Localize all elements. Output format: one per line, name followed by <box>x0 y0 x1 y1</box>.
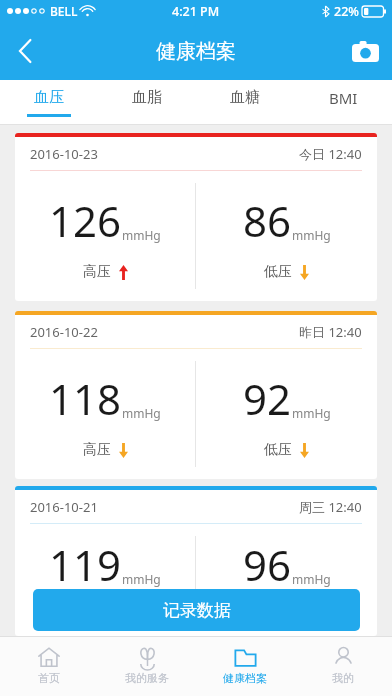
staticText: 96 <box>243 536 292 593</box>
staticText: 我的服务 <box>125 671 169 685</box>
button[interactable]: 我的 <box>294 636 392 696</box>
button[interactable]: 我的服务 <box>98 636 196 696</box>
staticText: 周三 12:40 <box>299 498 362 516</box>
staticText: 低压 <box>264 263 292 281</box>
staticText: 血脂 <box>132 88 162 107</box>
button[interactable]: 血糖 <box>196 80 294 125</box>
staticText: 血糖 <box>230 88 260 107</box>
staticText: 血压 <box>34 88 64 107</box>
staticText: mmHg <box>122 227 161 243</box>
staticText: mmHg <box>292 227 331 243</box>
staticText: 我的 <box>332 671 354 685</box>
button[interactable]: 记录数据 <box>33 589 360 631</box>
button[interactable]: Back <box>0 26 50 76</box>
staticText: BMI <box>329 88 358 108</box>
staticText: 22% <box>334 3 359 20</box>
staticText: 健康档案 <box>223 671 267 685</box>
button[interactable]: 健康档案 <box>196 636 294 696</box>
button[interactable]: 2016-10-21 <box>15 486 377 636</box>
staticText: 昨日 12:40 <box>299 323 362 341</box>
staticText: 2016-10-21 <box>30 498 98 516</box>
staticText: 高压 <box>83 263 111 281</box>
staticText: 119 <box>49 536 122 593</box>
staticText: 2016-10-23 <box>30 145 98 163</box>
staticText: 低压 <box>264 441 292 459</box>
staticText: 2016-10-22 <box>30 323 98 341</box>
staticText: 今日 12:40 <box>299 145 362 163</box>
staticText: 4:21 PM <box>172 3 220 20</box>
staticText: mmHg <box>292 405 331 421</box>
staticText: 92 <box>243 370 292 427</box>
staticText: 高压 <box>83 441 111 459</box>
button[interactable]: 2016-10-23 <box>15 133 377 301</box>
staticText: BELL <box>50 3 78 19</box>
button[interactable]: 首页 <box>0 636 98 696</box>
button[interactable]: 血脂 <box>98 80 196 125</box>
button[interactable]: BMI <box>294 80 392 125</box>
staticText: mmHg <box>122 405 161 421</box>
button[interactable]: 血压 <box>0 80 98 125</box>
button[interactable]: Camera <box>338 26 392 76</box>
staticText: 健康档案 <box>156 39 236 64</box>
staticText: mmHg <box>122 571 161 587</box>
staticText: 86 <box>243 192 292 249</box>
staticText: 记录数据 <box>163 600 231 621</box>
button[interactable]: 2016-10-22 <box>15 311 377 479</box>
staticText: 118 <box>49 370 122 427</box>
staticText: mmHg <box>292 571 331 587</box>
staticText: 126 <box>49 192 122 249</box>
staticText: 首页 <box>38 671 60 685</box>
